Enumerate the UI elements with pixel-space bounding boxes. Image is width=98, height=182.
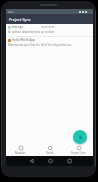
staticText: Modules — [15, 151, 26, 155]
staticText: Project Sync — [9, 17, 31, 22]
button[interactable]: Hello World App — [8, 38, 91, 47]
button[interactable]: Modules — [6, 146, 35, 156]
button[interactable]: few ago — [8, 25, 91, 34]
staticText: Hello World App — [12, 38, 35, 42]
button[interactable] — [73, 130, 87, 144]
staticText: Builds — [46, 151, 54, 155]
staticText: A runtime dependencies up to date — [8, 30, 55, 34]
staticText: Project Sync — [71, 151, 86, 155]
staticText: few ago — [12, 25, 24, 29]
staticText: up to date — [41, 25, 55, 29]
button[interactable]: Project Sync — [64, 146, 93, 156]
staticText: Memorised sync files for all of the depe… — [8, 43, 72, 47]
button[interactable]: Builds — [35, 146, 64, 156]
button[interactable]: Project Sync — [6, 14, 93, 24]
